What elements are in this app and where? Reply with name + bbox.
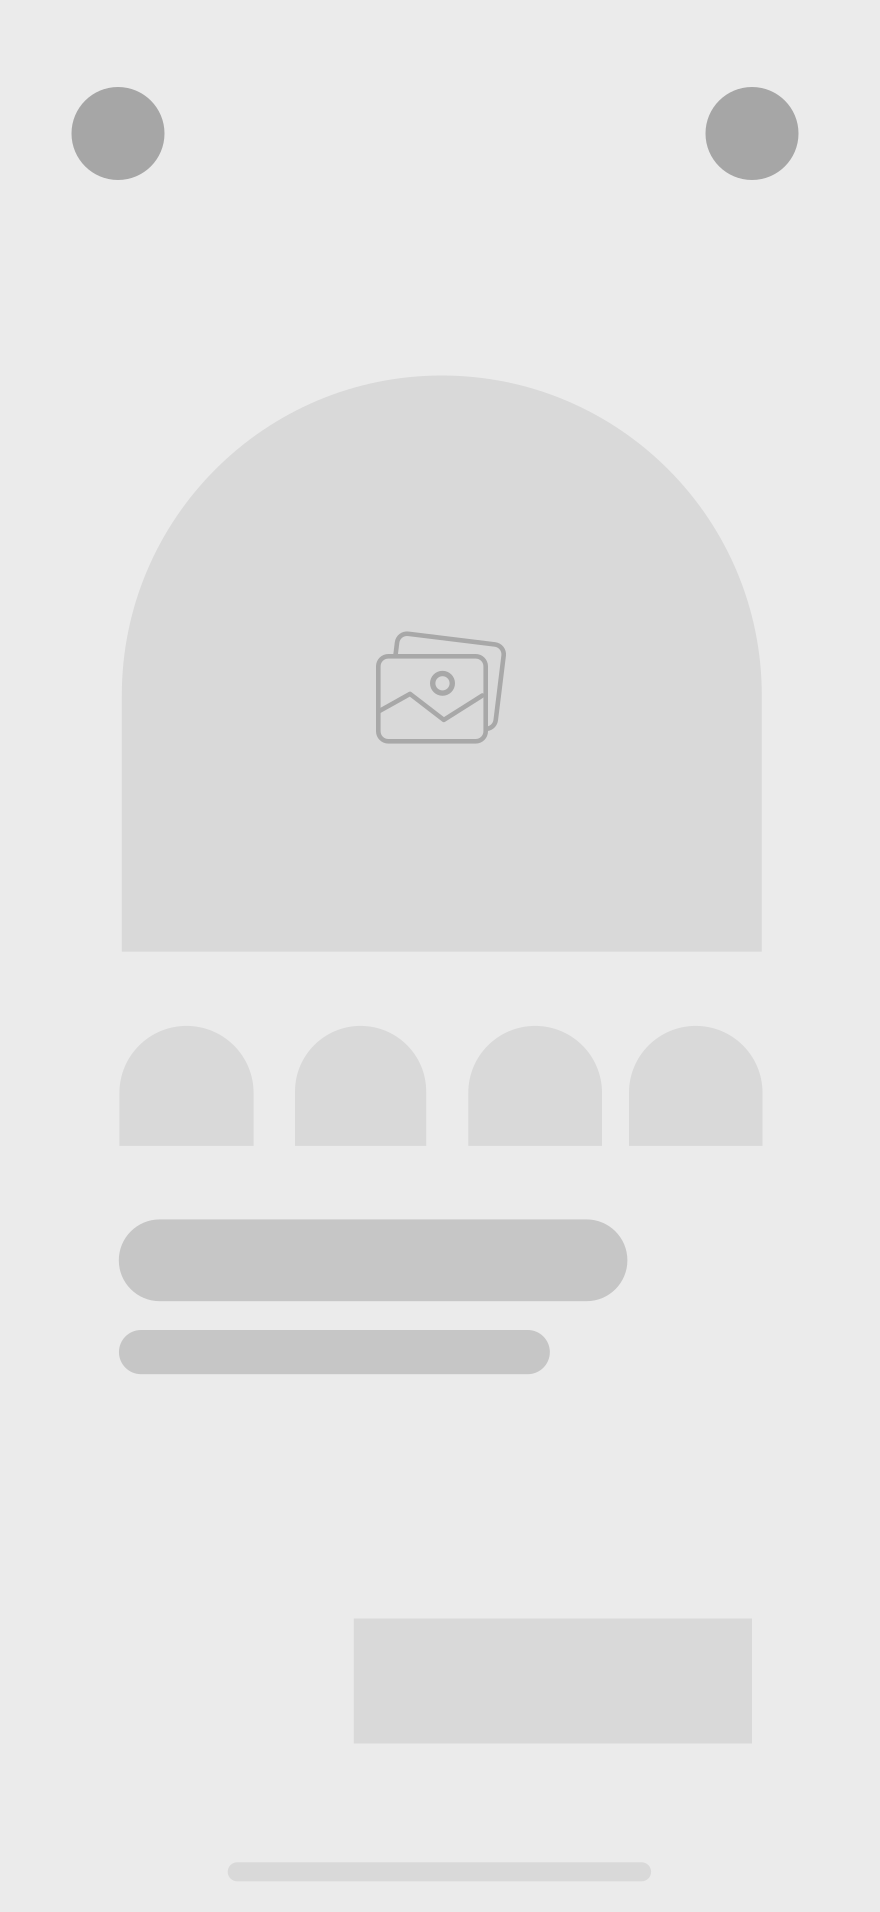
button[interactable]: Photo thumbnail (119, 1026, 254, 1146)
button[interactable]: Photo thumbnail (468, 1026, 602, 1146)
button[interactable]: Photo thumbnail (629, 1026, 762, 1146)
button[interactable]: Photo thumbnail (295, 1026, 426, 1146)
button[interactable]: Back (71, 87, 164, 180)
button[interactable]: More options (705, 87, 798, 180)
